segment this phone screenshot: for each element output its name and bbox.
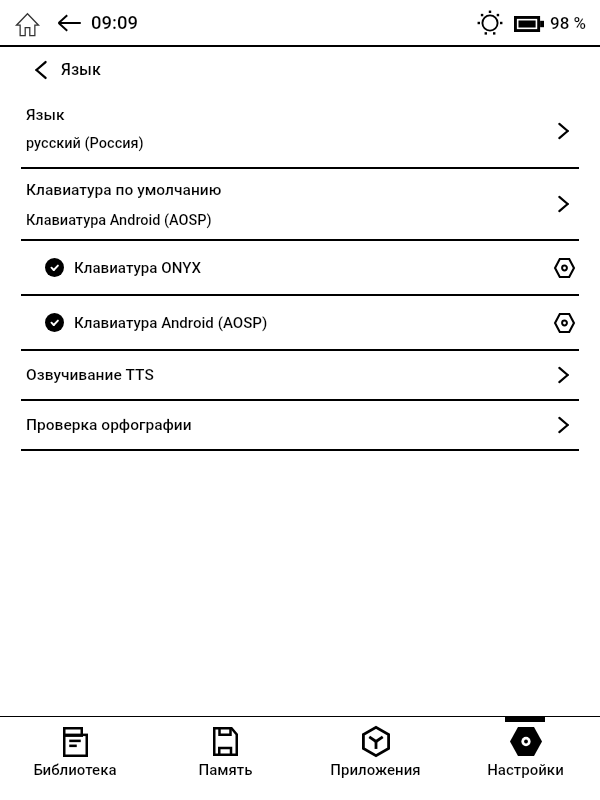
staticText: Клавиатура по умолчанию	[26, 181, 222, 199]
button[interactable]: Home	[14, 10, 40, 36]
staticText: русский (Россия)	[26, 135, 144, 152]
staticText: Озвучивание TTS	[26, 366, 558, 384]
button[interactable]: Клавиатура ONYX	[0, 241, 600, 294]
button[interactable]: Проверка орфографии	[0, 401, 600, 449]
staticText: 98 %	[550, 13, 587, 33]
staticText: Библиотека	[33, 761, 117, 779]
button[interactable]: Back	[57, 11, 81, 35]
button[interactable]: Приложения	[300, 716, 450, 800]
staticText: Настройки	[487, 761, 564, 779]
staticText: Клавиатура ONYX	[74, 259, 548, 277]
staticText: Память	[198, 761, 253, 779]
staticText: Клавиатура Android (AOSP)	[74, 314, 548, 332]
button[interactable]: Язык	[0, 47, 600, 95]
button[interactable]: Клавиатура Android (AOSP)	[0, 296, 600, 349]
button[interactable]: Язык	[0, 95, 600, 167]
button[interactable]: Настройки	[450, 716, 600, 800]
button[interactable]: Озвучивание TTS	[0, 351, 600, 399]
staticText: Клавиатура Android (AOSP)	[26, 212, 212, 229]
staticText: Приложения	[330, 761, 421, 779]
staticText: 09:09	[91, 12, 138, 34]
button[interactable]: Библиотека	[0, 716, 150, 800]
button[interactable]: Память	[150, 716, 300, 800]
staticText: Язык	[26, 106, 65, 124]
button[interactable]: Keyboard settings	[548, 252, 580, 284]
button[interactable]: Клавиатура по умолчанию	[0, 169, 600, 239]
button[interactable]: Keyboard settings	[548, 307, 580, 339]
button[interactable]: Brightness	[477, 10, 503, 36]
staticText: Язык	[61, 60, 101, 79]
staticText: Проверка орфографии	[26, 416, 558, 434]
